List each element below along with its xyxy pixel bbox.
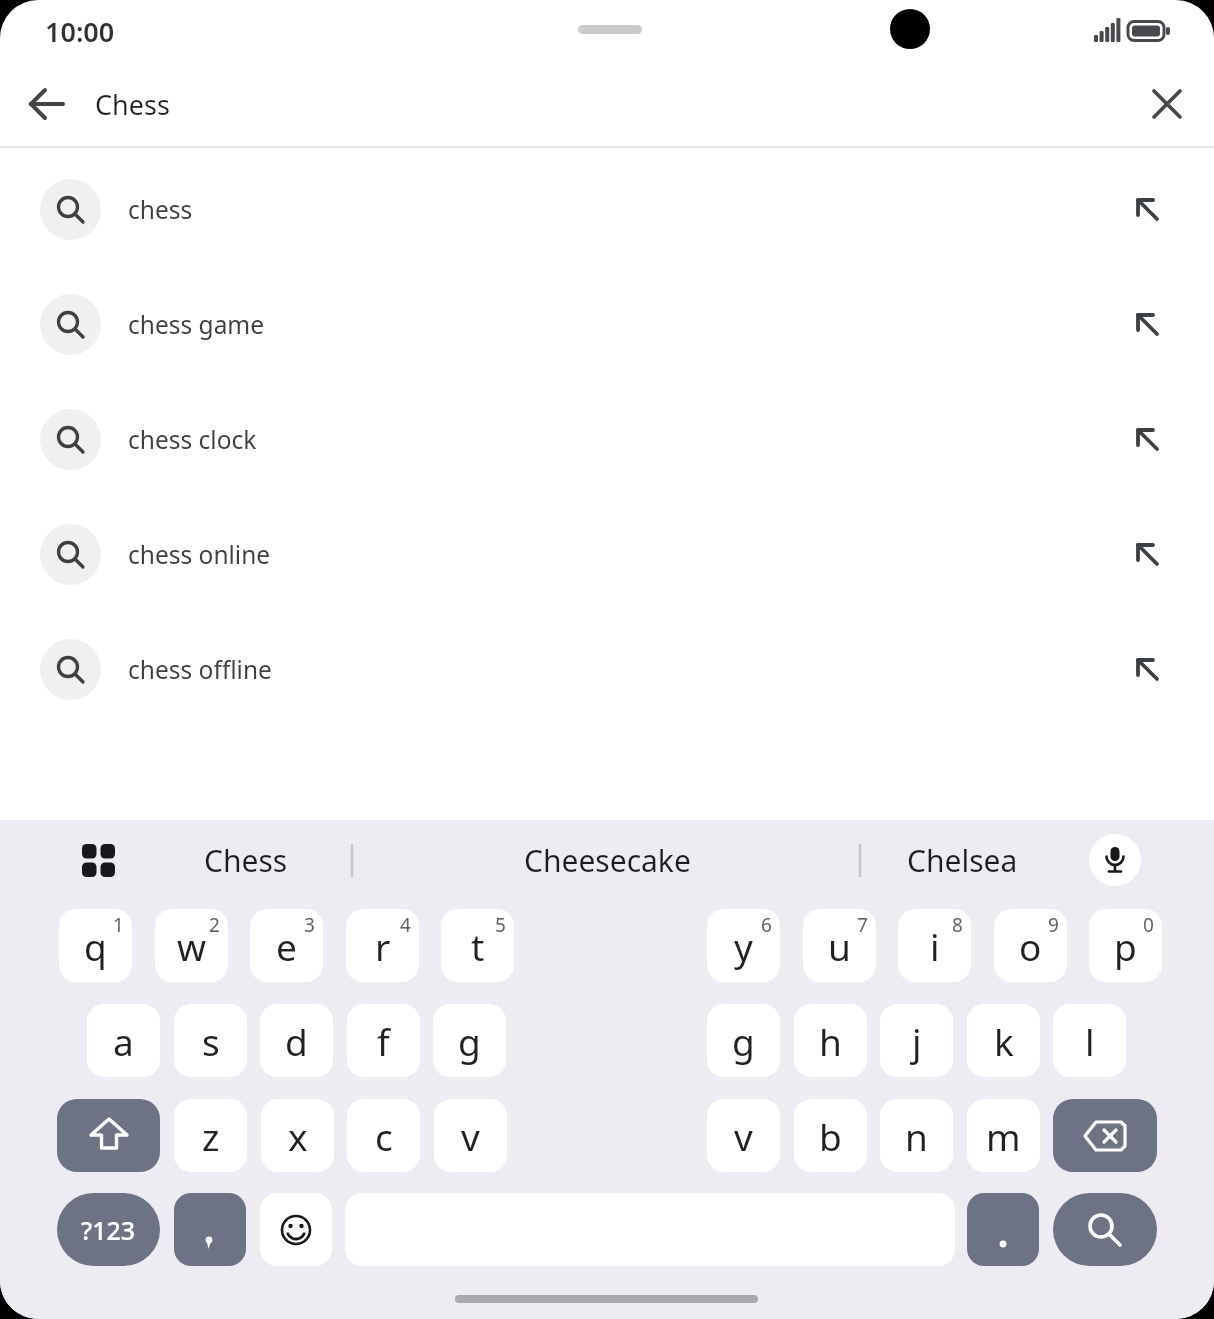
- button[interactable]: [1128, 650, 1168, 690]
- button[interactable]: [57, 1099, 160, 1172]
- staticText: a: [113, 1016, 134, 1066]
- staticText: v: [461, 1111, 480, 1161]
- button[interactable]: chess: [0, 152, 1214, 267]
- staticText: k: [994, 1016, 1014, 1066]
- button[interactable]: g: [707, 1004, 780, 1077]
- button[interactable]: [1128, 305, 1168, 345]
- button[interactable]: s: [174, 1004, 247, 1077]
- button[interactable]: Cheesecake: [354, 830, 860, 890]
- staticText: 2: [209, 912, 220, 938]
- staticText: p: [1114, 921, 1137, 971]
- staticText: 0: [1143, 912, 1154, 938]
- button[interactable]: Chelsea: [862, 830, 1062, 890]
- button[interactable]: [967, 1193, 1039, 1266]
- staticText: chess clock: [128, 423, 257, 456]
- button[interactable]: i: [898, 909, 971, 982]
- button[interactable]: [70, 832, 126, 888]
- staticText: 8: [952, 912, 963, 938]
- staticText: 10:00: [45, 13, 115, 50]
- button[interactable]: [1128, 420, 1168, 460]
- button[interactable]: w: [155, 909, 228, 982]
- staticText: o: [1019, 921, 1042, 971]
- staticText: f: [377, 1016, 390, 1066]
- button[interactable]: x: [261, 1099, 334, 1172]
- button[interactable]: [260, 1193, 332, 1266]
- button[interactable]: [1053, 1193, 1157, 1266]
- staticText: i: [930, 921, 940, 971]
- button[interactable]: chess clock: [0, 382, 1214, 497]
- button[interactable]: Chess: [140, 830, 352, 890]
- button[interactable]: g: [433, 1004, 506, 1077]
- staticText: d: [285, 1016, 308, 1066]
- staticText: u: [828, 921, 851, 971]
- button[interactable]: l: [1053, 1004, 1126, 1077]
- staticText: q: [84, 921, 107, 971]
- staticText: c: [375, 1111, 393, 1161]
- staticText: 1: [113, 912, 124, 938]
- staticText: s: [202, 1016, 220, 1066]
- staticText: r: [375, 921, 391, 971]
- staticText: m: [986, 1111, 1021, 1161]
- button[interactable]: chess offline: [0, 612, 1214, 727]
- staticText: 5: [495, 912, 506, 938]
- staticText: chess offline: [128, 653, 272, 686]
- staticText: l: [1085, 1016, 1095, 1066]
- button[interactable]: q: [59, 909, 132, 982]
- staticText: h: [819, 1016, 842, 1066]
- staticText: chess online: [128, 538, 271, 571]
- button[interactable]: n: [880, 1099, 953, 1172]
- staticText: Chess: [204, 840, 288, 881]
- button[interactable]: [174, 1193, 246, 1266]
- button[interactable]: v: [434, 1099, 507, 1172]
- staticText: ?123: [81, 1213, 136, 1247]
- staticText: 6: [761, 912, 772, 938]
- button[interactable]: t: [441, 909, 514, 982]
- staticText: t: [471, 921, 485, 971]
- staticText: Chess: [95, 86, 170, 123]
- staticText: v: [734, 1111, 753, 1161]
- staticText: j: [912, 1016, 922, 1066]
- button[interactable]: b: [794, 1099, 867, 1172]
- staticText: 4: [400, 912, 411, 938]
- button[interactable]: c: [347, 1099, 420, 1172]
- button[interactable]: [1128, 190, 1168, 230]
- button[interactable]: chess online: [0, 497, 1214, 612]
- staticText: x: [288, 1111, 308, 1161]
- button[interactable]: e: [250, 909, 323, 982]
- staticText: e: [276, 921, 297, 971]
- button[interactable]: [1053, 1099, 1157, 1172]
- staticText: chess game: [128, 308, 265, 341]
- button[interactable]: u: [803, 909, 876, 982]
- button[interactable]: r: [346, 909, 419, 982]
- button[interactable]: p: [1089, 909, 1162, 982]
- staticText: Chelsea: [907, 840, 1018, 881]
- staticText: n: [905, 1111, 928, 1161]
- button[interactable]: [22, 79, 72, 129]
- button[interactable]: j: [880, 1004, 953, 1077]
- staticText: 7: [857, 912, 868, 938]
- button[interactable]: a: [87, 1004, 160, 1077]
- staticText: b: [819, 1111, 842, 1161]
- button[interactable]: [1089, 834, 1141, 886]
- button[interactable]: v: [707, 1099, 780, 1172]
- button[interactable]: o: [994, 909, 1067, 982]
- button[interactable]: k: [967, 1004, 1040, 1077]
- staticText: z: [202, 1111, 220, 1161]
- button[interactable]: m: [967, 1099, 1040, 1172]
- button[interactable]: ?123: [57, 1193, 160, 1266]
- staticText: w: [177, 921, 207, 971]
- button[interactable]: y: [707, 909, 780, 982]
- button[interactable]: z: [174, 1099, 247, 1172]
- button[interactable]: chess game: [0, 267, 1214, 382]
- button[interactable]: h: [794, 1004, 867, 1077]
- staticText: y: [734, 921, 753, 971]
- button[interactable]: [1128, 535, 1168, 575]
- staticText: 9: [1048, 912, 1059, 938]
- staticText: Cheesecake: [524, 840, 691, 881]
- button[interactable]: [1145, 82, 1189, 126]
- staticText: chess: [128, 193, 193, 226]
- staticText: g: [732, 1016, 755, 1066]
- button[interactable]: d: [260, 1004, 333, 1077]
- button[interactable]: f: [347, 1004, 420, 1077]
